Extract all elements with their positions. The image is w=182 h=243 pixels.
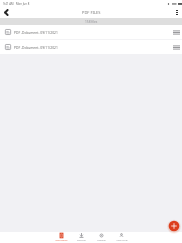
button[interactable]: PDF -Dokument- 09/11/2021 xyxy=(0,40,182,54)
button[interactable]: Mein Profil xyxy=(114,232,129,243)
button[interactable]: Row menu xyxy=(171,27,181,37)
staticText: Lizenzen xyxy=(97,239,106,242)
staticText: Dokumente xyxy=(55,239,68,242)
staticText: Speicher xyxy=(77,239,86,242)
staticText: Mein Profil xyxy=(116,239,128,242)
button[interactable]: Lizenzen xyxy=(94,232,109,243)
staticText: PDF -Dokument- 09/11/2021 xyxy=(14,30,58,34)
button[interactable]: PDF -Dokument- 09/11/2021 xyxy=(0,25,182,39)
staticText: PDF -Dokument- 09/11/2021 xyxy=(14,45,58,49)
button[interactable]: Row menu xyxy=(171,42,181,52)
button[interactable]: Back xyxy=(0,7,13,18)
button[interactable]: More options xyxy=(171,7,182,18)
staticText: 9:41 AM xyxy=(3,2,14,6)
button[interactable]: Dokumente xyxy=(54,232,69,243)
staticText: PDF FILES xyxy=(82,10,101,15)
staticText: Mon Jun 8 xyxy=(16,2,30,6)
button[interactable]: Add xyxy=(167,219,181,233)
button[interactable]: Speicher xyxy=(74,232,89,243)
staticText: 158 files xyxy=(85,20,98,24)
